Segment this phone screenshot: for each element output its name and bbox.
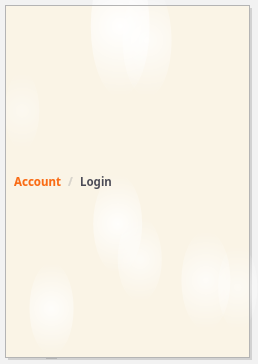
button[interactable]: Login <box>80 174 112 190</box>
staticText: / <box>68 174 73 190</box>
staticText: Login <box>80 174 112 190</box>
staticText: Account <box>14 174 61 190</box>
button[interactable]: Account <box>14 174 61 190</box>
